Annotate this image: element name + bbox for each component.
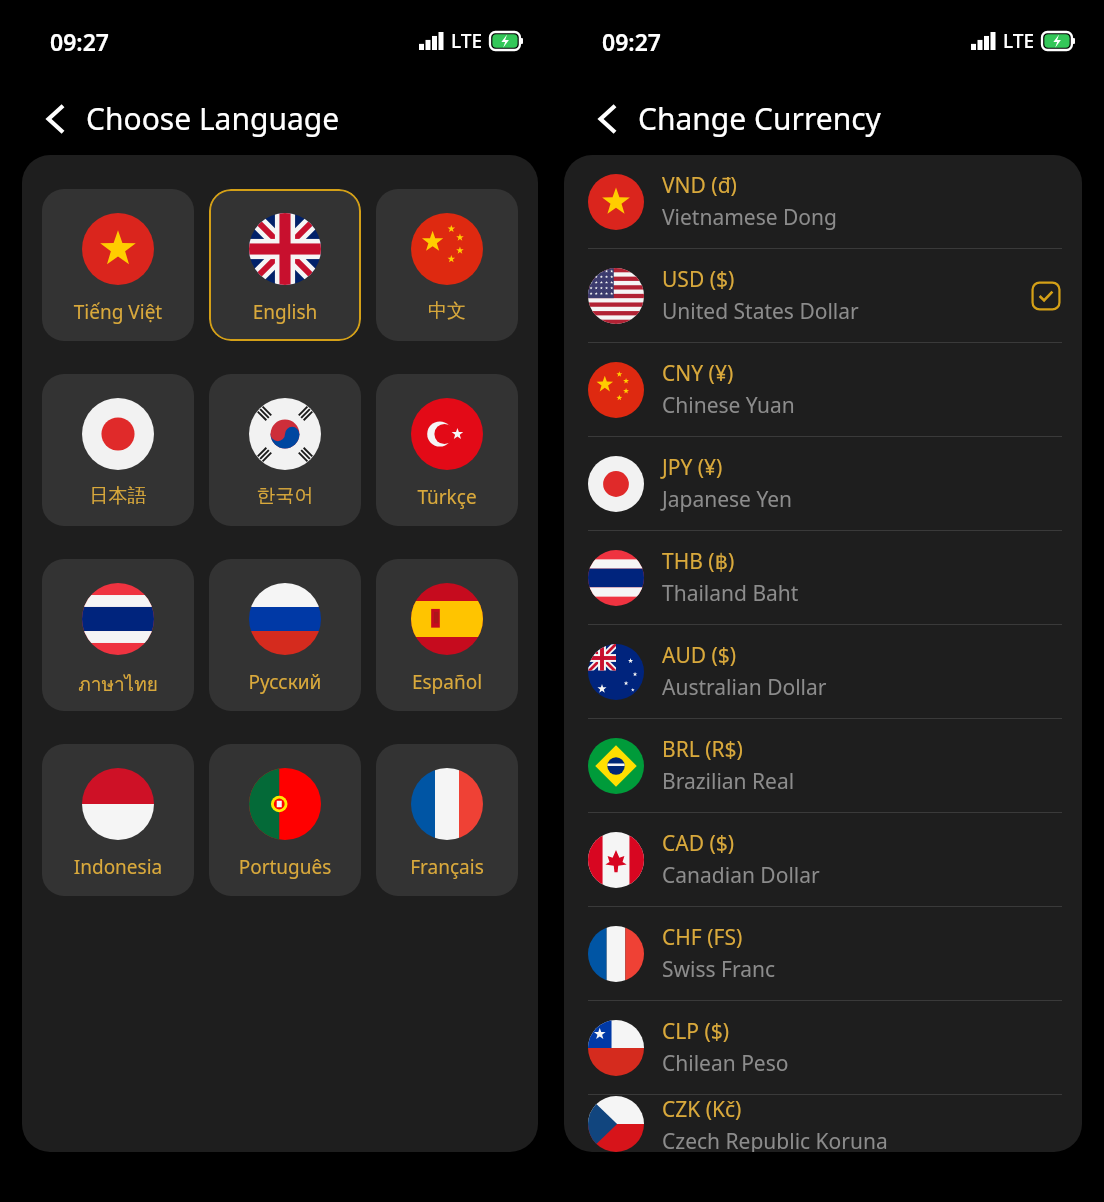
button[interactable]: BRL (R$) xyxy=(564,719,1082,812)
staticText: LTE xyxy=(1003,28,1035,54)
staticText: Brazilian Real xyxy=(662,767,795,796)
button[interactable]: CNY (¥) xyxy=(564,343,1082,436)
button[interactable]: Selected currency xyxy=(1030,280,1062,312)
button[interactable]: ภาษาไทย xyxy=(42,559,194,711)
staticText: Czech Republic Koruna xyxy=(662,1127,888,1152)
staticText: JPY (¥) xyxy=(662,453,723,482)
button[interactable]: USD ($) xyxy=(564,249,1082,342)
staticText: BRL (R$) xyxy=(662,735,743,764)
button[interactable]: CHF (FS) xyxy=(564,907,1082,1000)
button[interactable]: Back xyxy=(586,97,630,141)
button[interactable]: 한국어 xyxy=(209,374,361,526)
button[interactable]: CZK (Kč) xyxy=(564,1095,1082,1152)
staticText: Português xyxy=(209,854,361,880)
staticText: 中文 xyxy=(376,299,518,323)
staticText: Русский xyxy=(209,669,361,695)
staticText: 한국어 xyxy=(209,484,361,508)
button[interactable]: Español xyxy=(376,559,518,711)
button[interactable]: Indonesia xyxy=(42,744,194,896)
staticText: VND (đ) xyxy=(662,171,737,200)
staticText: AUD ($) xyxy=(662,641,737,670)
staticText: Japanese Yen xyxy=(662,485,793,514)
staticText: THB (฿) xyxy=(662,547,735,576)
button[interactable]: JPY (¥) xyxy=(564,437,1082,530)
button[interactable]: CLP ($) xyxy=(564,1001,1082,1094)
button[interactable]: Türkçe xyxy=(376,374,518,526)
button[interactable]: 日本語 xyxy=(42,374,194,526)
button[interactable]: Русский xyxy=(209,559,361,711)
staticText: Choose Language xyxy=(86,98,340,139)
button[interactable]: THB (฿) xyxy=(564,531,1082,624)
button[interactable]: 中文 xyxy=(376,189,518,341)
button[interactable]: AUD ($) xyxy=(564,625,1082,718)
staticText: English xyxy=(209,299,361,325)
staticText: Indonesia xyxy=(42,854,194,880)
staticText: United States Dollar xyxy=(662,297,859,326)
staticText: Chinese Yuan xyxy=(662,391,795,420)
staticText: 日本語 xyxy=(42,484,194,508)
staticText: CZK (Kč) xyxy=(662,1095,742,1124)
staticText: CNY (¥) xyxy=(662,359,734,388)
button[interactable]: Tiếng Việt xyxy=(42,189,194,341)
staticText: Tiếng Việt xyxy=(42,299,194,325)
button[interactable]: VND (đ) xyxy=(564,155,1082,248)
staticText: CHF (FS) xyxy=(662,923,743,952)
staticText: 09:27 xyxy=(602,26,661,57)
button[interactable]: CAD ($) xyxy=(564,813,1082,906)
staticText: Canadian Dollar xyxy=(662,861,820,890)
staticText: USD ($) xyxy=(662,265,735,294)
staticText: ภาษาไทย xyxy=(42,669,194,699)
button[interactable]: Português xyxy=(209,744,361,896)
staticText: Chilean Peso xyxy=(662,1049,789,1078)
button[interactable]: English xyxy=(209,189,361,341)
staticText: 09:27 xyxy=(50,26,109,57)
staticText: Vietnamese Dong xyxy=(662,203,837,232)
staticText: Thailand Baht xyxy=(662,579,799,608)
staticText: Swiss Franc xyxy=(662,955,776,984)
staticText: CAD ($) xyxy=(662,829,735,858)
button[interactable]: Back xyxy=(34,97,78,141)
staticText: Change Currency xyxy=(638,98,881,139)
staticText: CLP ($) xyxy=(662,1017,730,1046)
staticText: Español xyxy=(376,669,518,695)
staticText: Australian Dollar xyxy=(662,673,827,702)
button[interactable]: Français xyxy=(376,744,518,896)
staticText: Français xyxy=(376,854,518,880)
staticText: LTE xyxy=(451,28,483,54)
staticText: Türkçe xyxy=(376,484,518,510)
